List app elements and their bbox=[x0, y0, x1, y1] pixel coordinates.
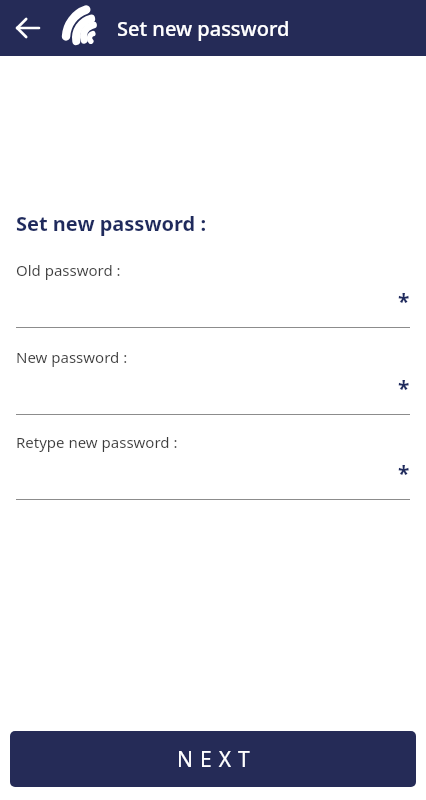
button[interactable] bbox=[0, 0, 56, 56]
staticText: NEXT bbox=[177, 745, 257, 774]
staticText: Retype new password : bbox=[16, 432, 178, 452]
button[interactable]: Retype new password : bbox=[16, 432, 410, 500]
button[interactable]: Old password : bbox=[16, 260, 410, 328]
staticText: New password : bbox=[16, 347, 128, 367]
staticText: Set new password : bbox=[16, 210, 207, 237]
staticText: * bbox=[398, 374, 410, 403]
button[interactable]: NEXT bbox=[10, 731, 416, 787]
staticText: Old password : bbox=[16, 260, 121, 280]
staticText: * bbox=[398, 287, 410, 316]
staticText: * bbox=[398, 459, 410, 488]
staticText: Set new password bbox=[117, 15, 290, 42]
button[interactable]: New password : bbox=[16, 347, 410, 415]
